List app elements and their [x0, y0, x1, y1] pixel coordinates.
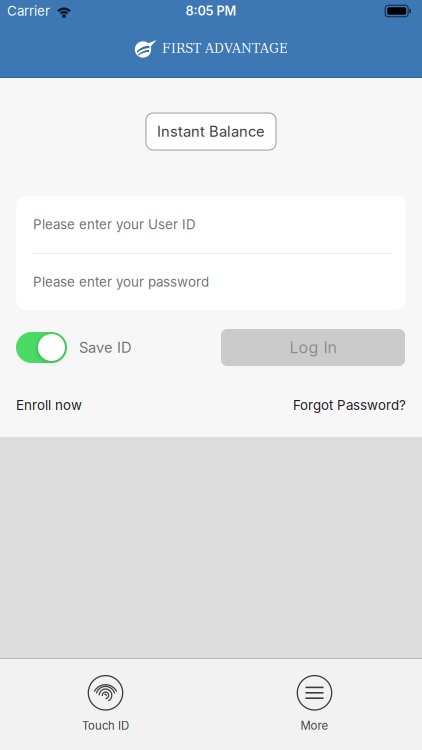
staticText: Forgot Password? [293, 397, 406, 413]
button[interactable]: Log In [221, 329, 405, 366]
staticText: Touch ID [82, 719, 129, 732]
staticText: Save ID [79, 339, 132, 356]
staticText: FIRST ADVANTAGE [162, 41, 288, 56]
button[interactable]: Save ID [16, 332, 67, 363]
staticText: More [300, 719, 328, 732]
staticText: 8:05 PM [185, 3, 236, 19]
staticText: Log In [289, 338, 336, 357]
button[interactable]: Forgot Password? [293, 397, 406, 413]
button[interactable]: User ID field [16, 196, 406, 253]
staticText: Carrier [7, 3, 50, 19]
staticText: Please enter your password [33, 274, 209, 290]
staticText: Instant Balance [157, 123, 265, 140]
button[interactable]: Instant Balance [146, 113, 276, 150]
button[interactable]: Touch ID [0, 675, 211, 732]
button[interactable]: More [211, 675, 422, 732]
staticText: Please enter your User ID [33, 216, 196, 232]
staticText: Enroll now [16, 397, 82, 413]
button[interactable]: Enroll now [16, 397, 82, 413]
button[interactable]: Password field [16, 254, 406, 310]
